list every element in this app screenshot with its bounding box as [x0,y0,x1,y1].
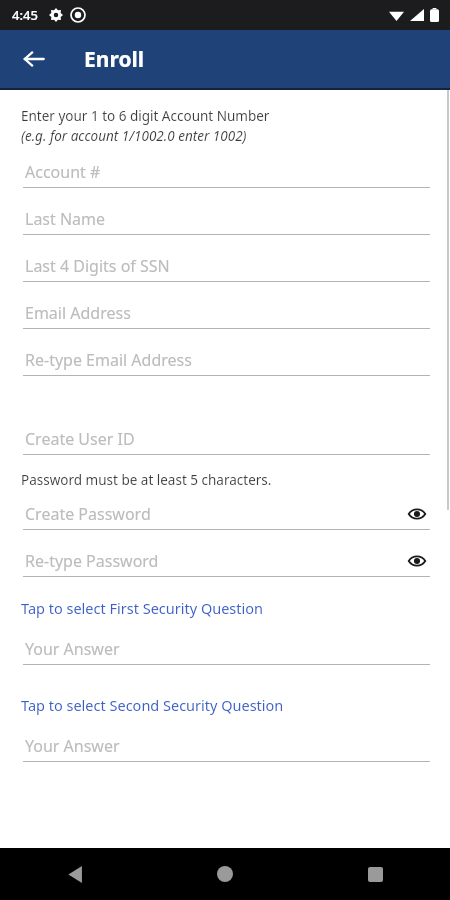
staticText: Your Answer [25,638,120,660]
staticText: Account # [25,161,101,183]
staticText: Last 4 Digits of SSN [25,255,170,277]
button[interactable]: Back [12,37,56,81]
staticText: 4:45 [12,6,38,24]
button[interactable]: Account # [23,157,430,188]
staticText: Re-type Email Address [25,349,192,371]
button[interactable]: Re-type Email Address [23,345,430,376]
staticText: (e.g. for account 1/1002.0 enter 1002) [21,127,247,145]
button[interactable]: Email Address [23,298,430,329]
button[interactable]: Your Answer [23,634,430,665]
button[interactable]: Last 4 Digits of SSN [23,251,430,282]
staticText: Create Password [25,503,151,525]
staticText: Password must be at least 5 characters. [21,471,272,489]
staticText: Re-type Password [25,550,159,572]
staticText: Enroll [84,45,145,74]
button[interactable]: Recent apps [300,848,450,900]
button[interactable]: Tap to select First Security Question [21,598,429,618]
button[interactable]: Show re-typed password [404,548,430,574]
button[interactable]: Create Password [23,499,430,530]
button[interactable]: Last Name [23,204,430,235]
button[interactable]: Your Answer [23,731,430,762]
button[interactable]: Show password [404,501,430,527]
staticText: Tap to select First Security Question [21,598,264,618]
button[interactable]: Tap to select Second Security Question [21,695,429,715]
button[interactable]: Back [0,848,150,900]
button[interactable]: Home [150,848,300,900]
staticText: Create User ID [25,428,135,450]
staticText: Tap to select Second Security Question [21,695,284,715]
staticText: Email Address [25,302,131,324]
button[interactable]: Create User ID [23,424,430,455]
staticText: Your Answer [25,735,120,757]
staticText: Enter your 1 to 6 digit Account Number [21,107,270,125]
button[interactable]: Re-type Password [23,546,430,577]
staticText: Last Name [25,208,106,230]
